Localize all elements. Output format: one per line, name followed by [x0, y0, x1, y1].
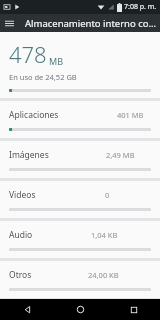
staticText: 0 [105, 190, 110, 200]
staticText: Imágenes [9, 149, 49, 161]
staticText: MB [49, 55, 64, 67]
staticText: 1,04 KB [91, 230, 118, 240]
staticText: 7:08 p. m. [124, 2, 157, 12]
staticText: Audio [9, 229, 33, 241]
button[interactable]: 478 [0, 32, 160, 98]
staticText: En uso de 24,52 GB [9, 72, 77, 82]
staticText: Videos [9, 189, 36, 201]
staticText: 24,00 KB [88, 270, 119, 280]
button[interactable]: Imágenes [0, 141, 160, 178]
staticText: 478 [9, 39, 47, 69]
staticText: 2,49 MB [106, 150, 135, 160]
staticText: Otros [9, 269, 32, 281]
button[interactable]: Audio [0, 221, 160, 258]
staticText: Almacenamiento interno com… [25, 17, 160, 30]
button[interactable]: Recent apps [107, 299, 160, 320]
button[interactable]: Back [0, 299, 54, 320]
staticText: 401 MB [117, 110, 144, 120]
staticText: Aplicaciones [9, 109, 59, 121]
button[interactable]: Aplicaciones [0, 101, 160, 138]
button[interactable]: Home [54, 299, 107, 320]
button[interactable]: Otros [0, 261, 160, 298]
button[interactable]: Videos [0, 181, 160, 218]
button[interactable]: Open navigation menu [0, 14, 18, 32]
